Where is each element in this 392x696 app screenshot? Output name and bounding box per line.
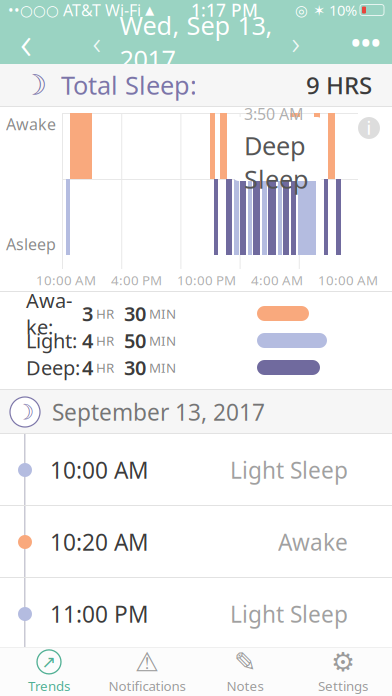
staticText: ⚠ [135,647,159,677]
staticText: Asleep [6,233,56,255]
staticText: 10:20 AM [50,527,149,557]
staticText: 10:00 AM [318,271,378,289]
staticText: 50 [124,327,146,354]
staticText: 3:50 AM [244,103,304,124]
staticText: ⚙ [331,647,355,677]
staticText: ◎ ✶ 10% [295,0,357,20]
staticText: › [291,21,299,63]
button[interactable]: Next day [284,22,306,62]
staticText: 4 [82,354,93,381]
staticText: 10:00 AM [50,455,149,485]
staticText: Light: [26,327,77,354]
staticText: ↗ [41,652,56,672]
staticText: MIN [146,305,176,322]
button[interactable]: Previous day [85,22,107,62]
staticText: ‹ [92,21,100,63]
staticText: ✎ [234,647,256,677]
staticText: ▲ [145,3,154,17]
button[interactable]: ⚠ [98,648,196,696]
staticText: ••• [351,25,381,59]
staticText: 1:17 PM [191,0,258,21]
staticText: Settings [318,677,368,695]
staticText: i [366,116,371,139]
staticText: ••○○○ [8,0,59,20]
staticText: 10:00 AM [36,271,96,289]
staticText: MIN [146,332,176,349]
staticText: Light Sleep [230,455,348,485]
staticText: 4:00 AM [251,271,303,289]
staticText: Awake [6,113,56,135]
staticText: MIN [146,359,176,376]
staticText: ☽ [22,69,47,101]
staticText: 11:00 PM [50,599,149,629]
staticText: Total Sleep: [61,68,197,102]
staticText: September 13, 2017 [52,397,265,427]
staticText: 9 HRS [306,69,372,101]
staticText: Deep Sleep [244,128,309,196]
staticText: Trends [28,677,70,695]
button[interactable]: ✎ [196,648,294,696]
staticText: ☽ [15,400,34,424]
staticText: Awake [278,527,348,557]
button[interactable]: 10:20 AM [0,506,392,578]
staticText: 30 [124,300,146,327]
staticText: Notifications [108,677,185,695]
button[interactable]: ⚙ [294,648,392,696]
button[interactable]: Back [0,20,52,64]
staticText: Awake: [26,287,72,340]
staticText: 30 [124,354,146,381]
staticText: 10:00 PM [177,271,236,289]
staticText: HR [93,332,114,349]
staticText: 4 [82,327,93,354]
button[interactable]: 11:00 PM [0,578,392,650]
staticText: Wed, Sep 13, 2017 [119,8,272,76]
staticText: Notes [226,677,263,695]
staticText: AT&T Wi-Fi [59,0,145,21]
staticText: Deep: [26,354,80,381]
button[interactable]: ↗ [0,648,98,696]
button[interactable]: More options [340,20,392,64]
button[interactable]: 10:00 AM [0,434,392,506]
staticText: 3 [82,300,93,327]
staticText: HR [93,305,114,322]
staticText: ‹ [20,12,32,72]
staticText: HR [93,359,114,376]
staticText: 4:00 PM [111,271,162,289]
staticText: Light Sleep [230,599,348,629]
button[interactable]: Chart information [354,113,384,143]
